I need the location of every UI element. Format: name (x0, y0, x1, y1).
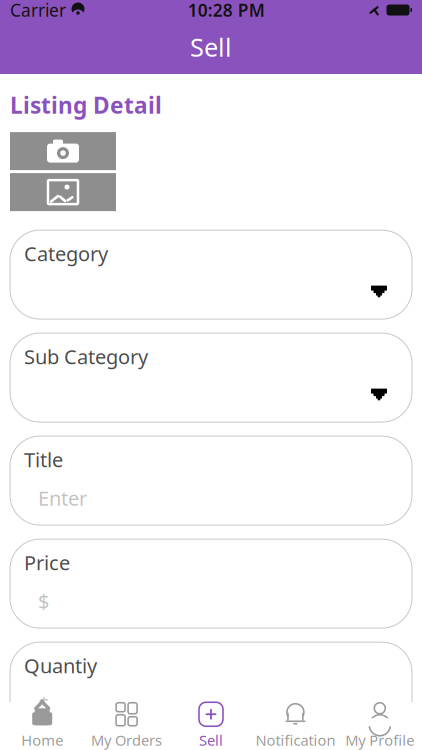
button[interactable]: Title (10, 436, 412, 525)
staticText: Sell (190, 30, 232, 64)
staticText: Enter (38, 485, 87, 511)
button[interactable]: Choose photo (10, 173, 116, 211)
staticText: $ (38, 588, 49, 614)
staticText: My Profile (345, 730, 414, 750)
button[interactable]: Take photo (10, 132, 116, 170)
button[interactable]: Quantiy (10, 642, 412, 731)
button[interactable]: My Profile (338, 702, 422, 750)
button[interactable]: Price (10, 539, 412, 628)
staticText: Quantiy (24, 652, 97, 679)
staticText: Notification (255, 730, 335, 750)
staticText: 10:28 PM (188, 0, 265, 21)
staticText: Title (24, 446, 63, 473)
button[interactable]: Sell (169, 702, 253, 750)
staticText: $ (38, 691, 49, 717)
button[interactable]: Category (10, 230, 412, 319)
staticText: Carrier (10, 0, 66, 21)
staticText: Listing Detail (10, 90, 162, 120)
staticText: Sell (199, 730, 223, 750)
button[interactable]: My Orders (84, 702, 169, 750)
button[interactable]: Home (0, 702, 84, 750)
button[interactable]: Notification (253, 702, 338, 750)
staticText: Sub Category (24, 343, 148, 370)
staticText: My Orders (91, 730, 162, 750)
staticText: Price (24, 549, 70, 576)
staticText: Home (21, 730, 63, 750)
button[interactable]: Sub Category (10, 333, 412, 422)
staticText: Category (24, 240, 108, 267)
